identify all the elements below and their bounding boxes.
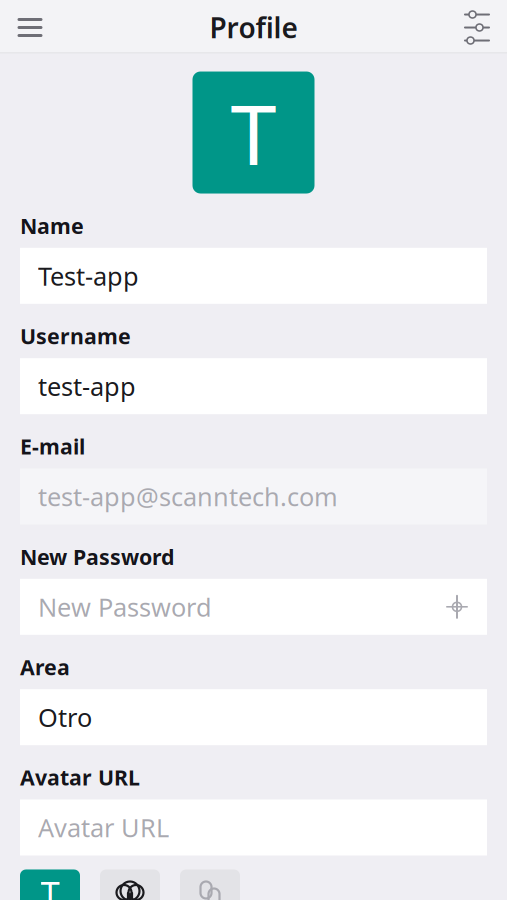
staticText: T (230, 78, 276, 187)
staticText: Test-app (38, 259, 139, 293)
staticText: Name (20, 211, 84, 240)
button[interactable]: Avatar from link (180, 869, 240, 900)
staticText: T (40, 870, 59, 900)
staticText: Otro (38, 700, 92, 734)
staticText: E-mail (20, 432, 85, 460)
staticText: Username (20, 322, 131, 350)
button[interactable]: Upload avatar (100, 869, 160, 900)
staticText: test-app (38, 369, 136, 403)
staticText: test-app@scanntech.com (38, 480, 338, 513)
button[interactable]: Settings (455, 5, 499, 49)
staticText: New Password (38, 590, 212, 624)
button[interactable]: Initial avatar (20, 869, 80, 900)
staticText: Avatar URL (38, 811, 169, 844)
staticText: Profile (209, 9, 297, 46)
button[interactable]: Menu (8, 5, 52, 49)
staticText: Area (20, 653, 70, 681)
staticText: New Password (20, 542, 174, 571)
staticText: Avatar URL (20, 763, 140, 791)
